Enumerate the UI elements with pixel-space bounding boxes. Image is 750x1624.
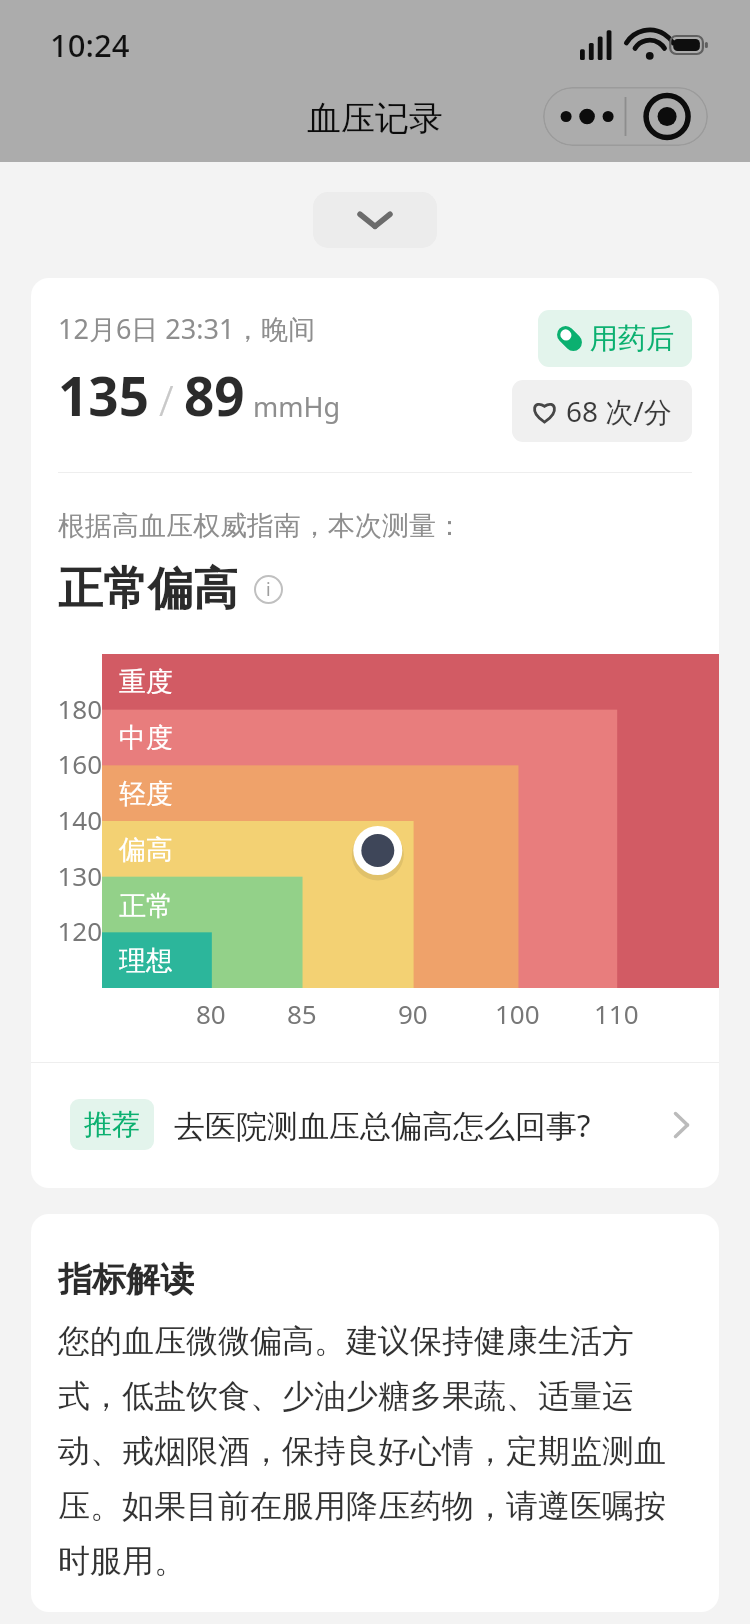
staticText: 您的血压微微偏高。建议保持健康生活方式，低盐饮食、少油少糖多果蔬、适量运动、戒烟… bbox=[58, 1321, 692, 1582]
staticText: 89 bbox=[184, 359, 245, 431]
staticText: 135 bbox=[58, 359, 149, 431]
staticText: 90 bbox=[398, 996, 428, 1026]
staticText: 140 bbox=[57, 802, 102, 837]
button[interactable]: Collapse bbox=[313, 192, 437, 248]
staticText: 根据高血压权威指南，本次测量： bbox=[58, 509, 463, 543]
staticText: 130 bbox=[57, 858, 102, 893]
staticText: 10:24 bbox=[50, 24, 130, 66]
staticText: 去医院测血压总偏高怎么回事? bbox=[174, 1104, 674, 1146]
staticText: 68 次/分 bbox=[566, 392, 672, 430]
staticText: 偏高 bbox=[119, 833, 173, 867]
staticText: 160 bbox=[57, 746, 102, 781]
staticText: 轻度 bbox=[119, 777, 173, 811]
staticText: 12月6日 23:31，晚间 bbox=[58, 310, 316, 347]
staticText: 80 bbox=[196, 996, 226, 1026]
staticText: 正常偏高 bbox=[58, 561, 238, 618]
staticText: 正常 bbox=[119, 889, 173, 923]
staticText: 理想 bbox=[119, 944, 173, 978]
button[interactable]: More options and exit bbox=[543, 87, 708, 146]
staticText: i bbox=[266, 577, 271, 602]
staticText: 血压记录 bbox=[307, 97, 443, 140]
staticText: 85 bbox=[287, 996, 317, 1026]
staticText: 推荐 bbox=[84, 1107, 140, 1142]
staticText: 100 bbox=[495, 996, 540, 1026]
button[interactable]: Info bbox=[254, 575, 283, 604]
staticText: 中度 bbox=[119, 721, 173, 755]
staticText: 120 bbox=[57, 913, 102, 948]
button[interactable]: 推荐 bbox=[31, 1063, 719, 1188]
staticText: 用药后 bbox=[590, 321, 674, 356]
staticText: 重度 bbox=[119, 665, 173, 699]
staticText: 180 bbox=[57, 691, 102, 726]
button[interactable]: 用药后 bbox=[538, 310, 692, 367]
staticText: 指标解读 bbox=[58, 1258, 194, 1301]
staticText: 110 bbox=[594, 996, 639, 1026]
button[interactable]: 68 次/分 bbox=[512, 380, 692, 442]
staticText: / bbox=[159, 371, 174, 428]
staticText: mmHg bbox=[253, 388, 341, 425]
